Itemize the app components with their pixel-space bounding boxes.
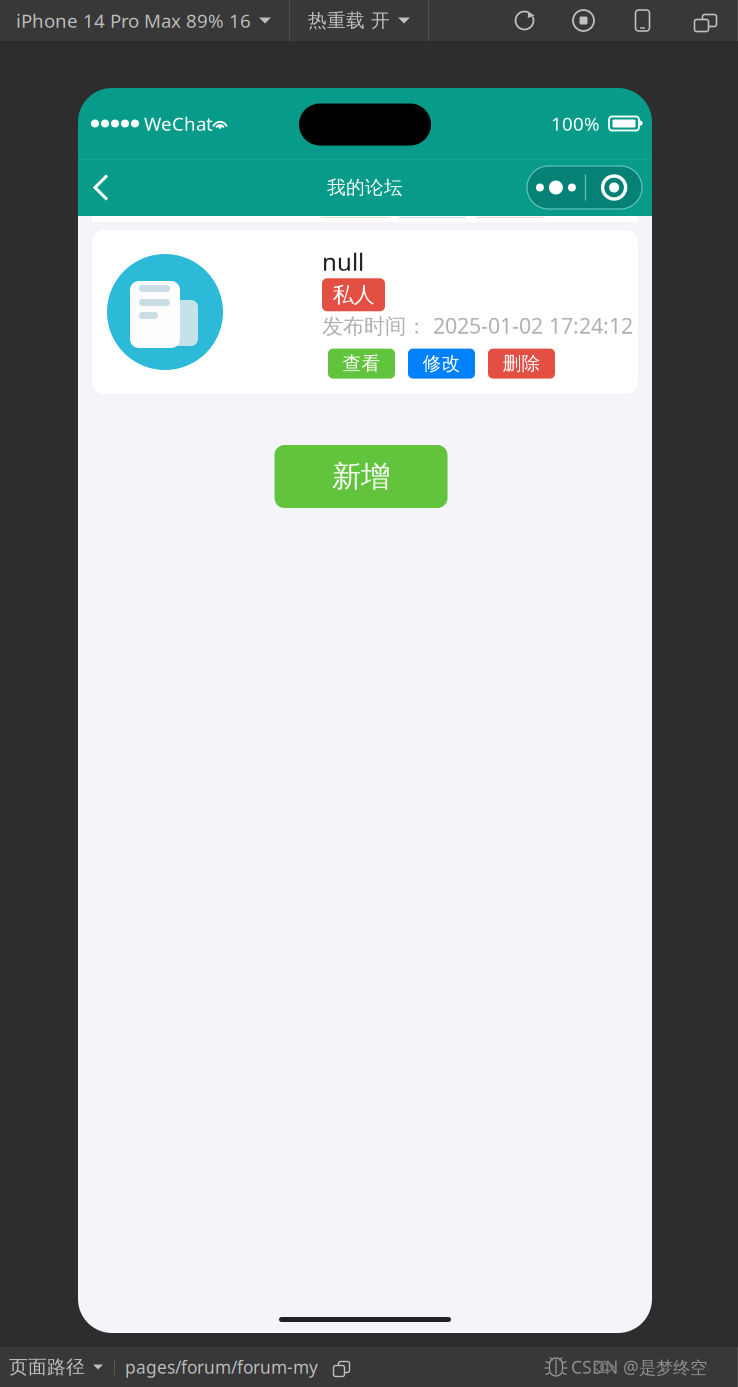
button[interactable]: 新增 — [274, 445, 447, 508]
button[interactable]: 查看 — [328, 349, 395, 379]
button[interactable]: 热重载 开 — [290, 0, 428, 41]
staticText: 100% — [551, 111, 600, 136]
staticText: 私人 — [332, 282, 374, 308]
staticText: CSDN @是梦终空 — [571, 1355, 707, 1378]
button[interactable]: 删除 — [488, 349, 555, 379]
button[interactable]: 修改 — [408, 349, 475, 379]
button[interactable]: iPhone 14 Pro Max 89% 16 — [0, 0, 289, 41]
staticText: 新增 — [332, 458, 390, 494]
button[interactable]: Stop — [554, 0, 613, 41]
staticText: 页面路径 — [9, 1355, 85, 1378]
staticText: pages/forum/forum-my — [125, 1355, 318, 1378]
staticText: WeChat — [144, 111, 213, 136]
button[interactable]: Debug — [544, 1356, 568, 1378]
button[interactable]: Back — [78, 159, 124, 215]
button[interactable]: Device — [613, 0, 672, 41]
staticText: 我的论坛 — [327, 176, 403, 199]
staticText: 删除 — [502, 352, 540, 375]
staticText: null — [322, 245, 364, 277]
button[interactable]: Refresh — [495, 0, 554, 41]
button[interactable]: More — [527, 166, 585, 209]
staticText: 修改 — [422, 352, 460, 375]
staticText: 发布时间： 2025-01-02 17:24:12 — [322, 311, 633, 340]
button[interactable]: Close — [586, 166, 642, 209]
button[interactable]: 页面路径 — [0, 1347, 114, 1387]
staticText: 查看 — [342, 352, 380, 375]
button[interactable]: Copy path — [328, 1356, 350, 1378]
button[interactable]: Windows — [672, 0, 731, 41]
staticText: iPhone 14 Pro Max 89% 16 — [16, 8, 251, 33]
staticText: 热重载 开 — [308, 9, 390, 32]
